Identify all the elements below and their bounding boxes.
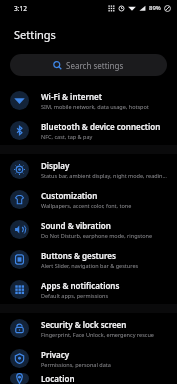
other: Vibrate xyxy=(108,5,115,12)
other: Alarm xyxy=(118,5,125,12)
staticText: NFC, cast, tap & pay xyxy=(41,133,93,140)
button[interactable]: Wi-Fi & internet xyxy=(0,85,177,115)
staticText: Permissions, personal data xyxy=(41,361,111,368)
staticText: Apps & notifications xyxy=(41,280,120,291)
staticText: Display xyxy=(41,160,70,171)
button[interactable]: Security & lock screen xyxy=(0,313,177,343)
button[interactable]: Location xyxy=(0,373,177,384)
staticText: 3:12 xyxy=(14,4,27,13)
staticText: Settings xyxy=(14,27,56,42)
staticText: Location xyxy=(41,373,75,384)
staticText: Alert Slider, navigation bar & gestures xyxy=(41,262,139,269)
other: Do not disturb xyxy=(164,5,171,12)
staticText: Privacy xyxy=(41,349,70,360)
staticText: Default apps, permissions xyxy=(41,292,109,299)
button[interactable]: Display xyxy=(0,154,177,184)
other: Signal xyxy=(139,5,146,12)
staticText: Security & lock screen xyxy=(41,319,127,330)
staticText: Wallpapers, accent color, font, tone xyxy=(41,202,132,209)
staticText: SIM, mobile network, data usage, hotspot xyxy=(41,103,149,110)
staticText: Bluetooth & device connection xyxy=(41,121,161,132)
staticText: Search settings xyxy=(66,60,124,71)
staticText: Wi-Fi & internet xyxy=(41,91,102,102)
staticText: Status bar, ambient display, night mode,… xyxy=(41,172,169,179)
button[interactable]: Bluetooth & device connection xyxy=(0,115,177,145)
button[interactable]: Customization xyxy=(0,184,177,214)
button[interactable]: Search settings xyxy=(10,54,167,76)
button[interactable]: Apps & notifications xyxy=(0,274,177,304)
button[interactable]: Sound & vibration xyxy=(0,214,177,244)
button[interactable]: Privacy xyxy=(0,343,177,373)
staticText: Customization xyxy=(41,190,98,201)
other: Wi-Fi xyxy=(128,4,136,12)
button[interactable]: Buttons & gestures xyxy=(0,244,177,274)
staticText: 89% xyxy=(149,4,161,12)
staticText: Do Not Disturb, earphone mode, ringstone xyxy=(41,232,152,239)
staticText: Sound & vibration xyxy=(41,220,111,231)
staticText: Buttons & gestures xyxy=(41,250,116,261)
staticText: Fingerprint, Face Unlock, emergency resc… xyxy=(41,331,154,338)
